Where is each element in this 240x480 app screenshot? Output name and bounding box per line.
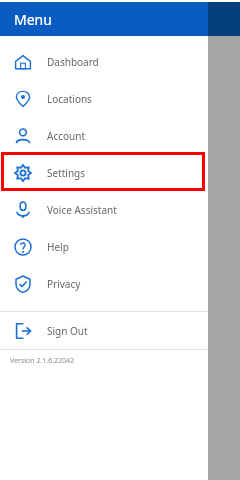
staticText: Help	[47, 240, 69, 254]
staticText: Account	[47, 129, 86, 143]
staticText: Voice Assistant	[47, 203, 117, 217]
button[interactable]: Privacy	[0, 265, 208, 302]
button[interactable]: Help	[0, 228, 208, 265]
staticText: Version 2.1.6.22042	[10, 356, 75, 366]
staticText: Dashboard	[47, 55, 99, 69]
staticText: Locations	[47, 92, 92, 106]
button[interactable]: Settings	[0, 154, 208, 191]
button[interactable]: Dashboard	[0, 43, 208, 80]
staticText: Sign Out	[47, 324, 88, 338]
button[interactable]: Locations	[0, 80, 208, 117]
staticText: Settings	[47, 166, 86, 180]
staticText: Privacy	[47, 277, 81, 291]
button[interactable]: Account	[0, 117, 208, 154]
staticText: Menu	[14, 10, 52, 29]
button[interactable]: Voice Assistant	[0, 191, 208, 228]
button[interactable]: Sign Out	[0, 312, 208, 349]
